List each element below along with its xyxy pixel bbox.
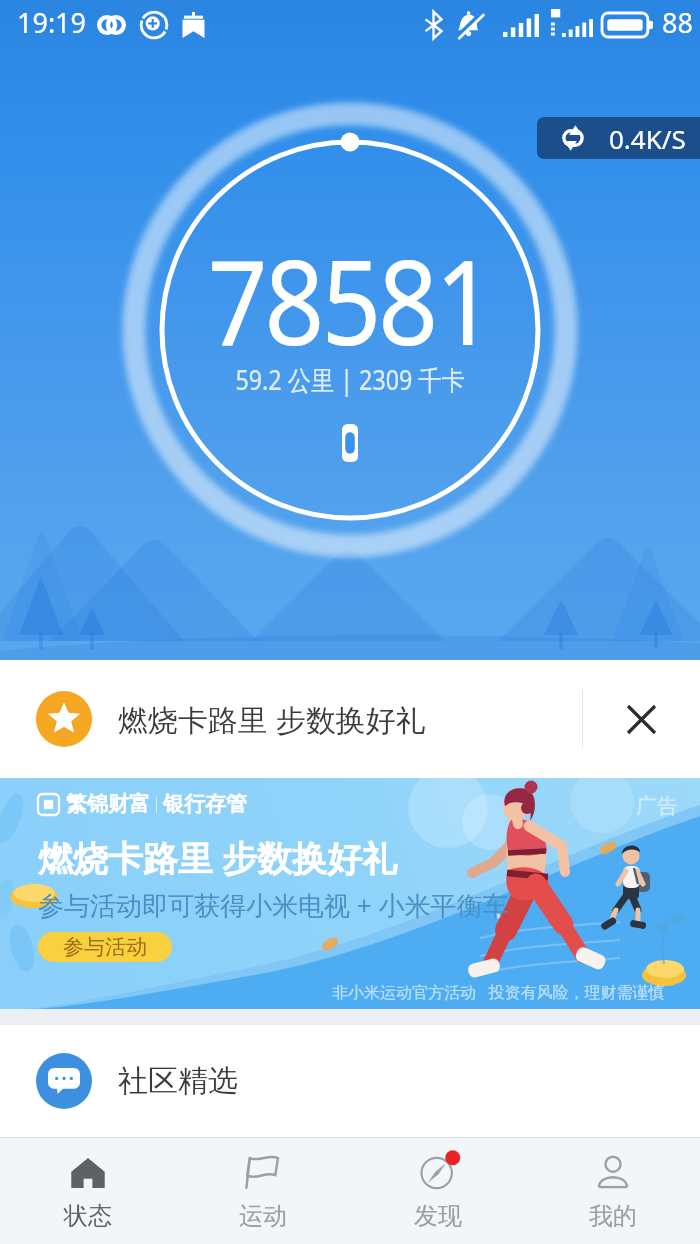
- staticText: 非小米运动官方活动 投资有风险，理财需谨慎: [332, 981, 665, 1003]
- button[interactable]: 燃烧卡路里 步数换好礼: [0, 660, 700, 778]
- staticText: 78581: [208, 220, 492, 379]
- staticText: 19:19: [17, 4, 87, 41]
- staticText: 状态: [64, 1201, 112, 1231]
- staticText: 运动: [239, 1201, 287, 1231]
- button[interactable]: 繁锦财富: [0, 778, 700, 1009]
- staticText: 燃烧卡路里 步数换好礼: [38, 834, 398, 882]
- staticText: 0.4K/S: [609, 121, 686, 156]
- staticText: 发现: [414, 1201, 462, 1231]
- staticText: 88: [662, 4, 693, 41]
- staticText: 繁锦财富: [66, 791, 150, 817]
- staticText: 银行存管: [163, 791, 247, 817]
- button[interactable]: 参与活动: [38, 932, 172, 962]
- button[interactable]: 运动: [175, 1138, 350, 1244]
- staticText: 59.2 公里 | 2309 千卡: [235, 361, 466, 398]
- button[interactable]: 状态: [0, 1138, 175, 1244]
- button[interactable]: 我的: [525, 1138, 700, 1244]
- staticText: 参与活动即可获得小米电视 + 小米平衡车: [38, 887, 509, 923]
- staticText: 燃烧卡路里 步数换好礼: [118, 699, 426, 740]
- button[interactable]: 关闭: [583, 660, 700, 778]
- staticText: 参与活动: [63, 934, 147, 960]
- staticText: 广告: [636, 793, 678, 819]
- button[interactable]: 0.4K/S: [561, 117, 686, 159]
- button[interactable]: 发现: [350, 1138, 525, 1244]
- staticText: 社区精选: [118, 1062, 238, 1100]
- button[interactable]: 社区精选: [0, 1025, 700, 1137]
- staticText: 我的: [589, 1201, 637, 1231]
